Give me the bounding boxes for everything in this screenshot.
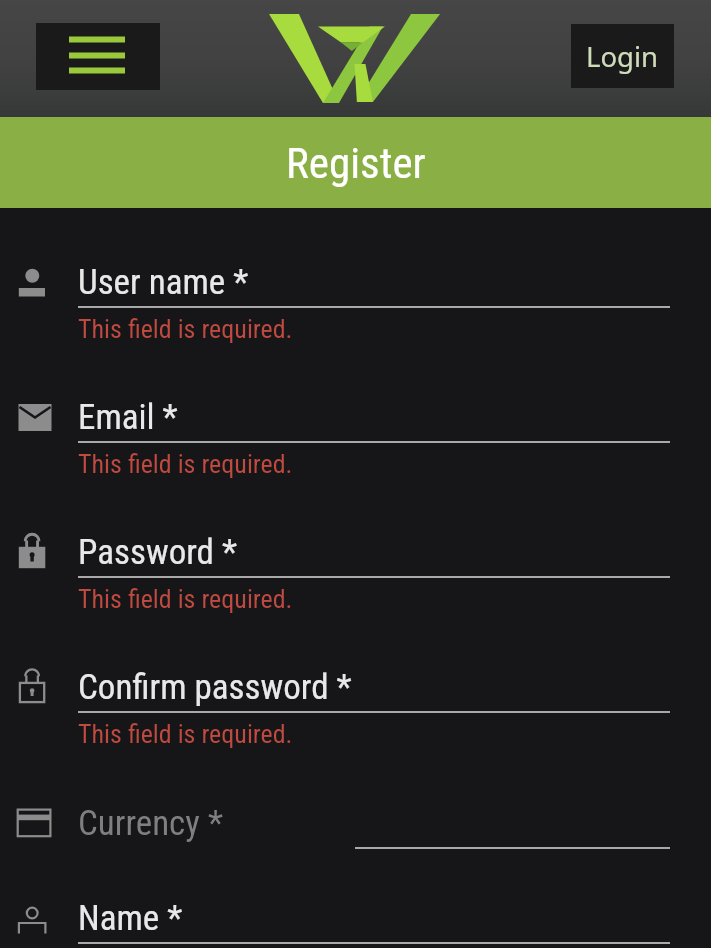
button[interactable]: Email * bbox=[0, 397, 711, 483]
staticText: User name * bbox=[78, 262, 249, 303]
staticText: Confirm password * bbox=[78, 667, 352, 708]
button[interactable]: Menu bbox=[36, 23, 160, 90]
button[interactable]: Login bbox=[571, 24, 674, 88]
staticText: Login bbox=[586, 38, 659, 75]
staticText: Register bbox=[286, 138, 426, 188]
staticText: Currency * bbox=[78, 803, 223, 844]
button[interactable]: User name * bbox=[0, 262, 711, 348]
button[interactable]: Confirm password * bbox=[0, 667, 711, 753]
staticText: This field is required. bbox=[78, 584, 293, 614]
staticText: This field is required. bbox=[78, 719, 293, 749]
staticText: Email * bbox=[78, 397, 178, 438]
staticText: Name * bbox=[78, 898, 183, 939]
staticText: This field is required. bbox=[78, 314, 293, 344]
button[interactable]: Name * bbox=[0, 898, 711, 948]
staticText: This field is required. bbox=[78, 449, 293, 479]
button[interactable]: Password * bbox=[0, 532, 711, 618]
button[interactable]: Currency * bbox=[0, 803, 711, 859]
staticText: Password * bbox=[78, 532, 238, 573]
